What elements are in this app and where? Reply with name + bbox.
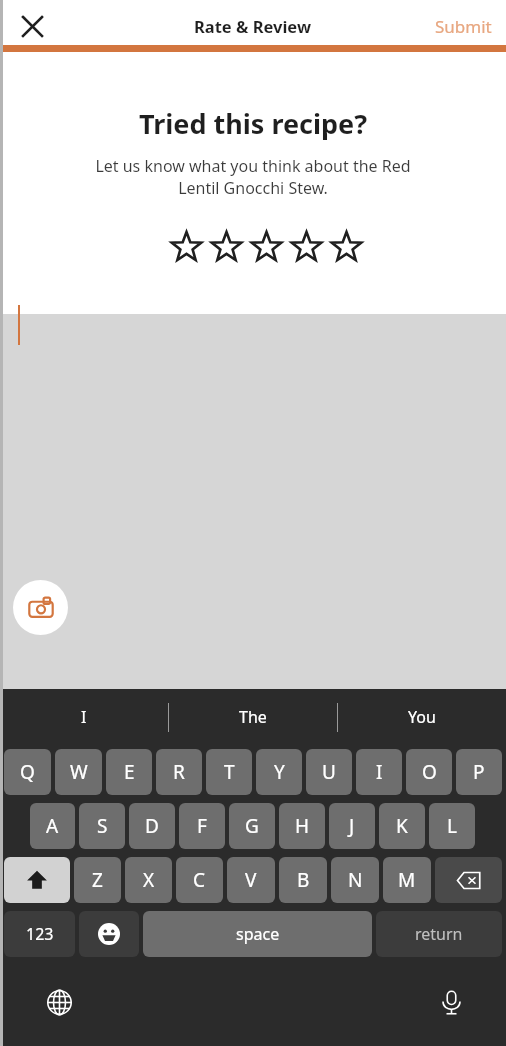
button[interactable]: C [176,857,223,903]
button[interactable]: Rate 2 stars [206,226,246,266]
staticText: Tried this recipe? [0,105,506,142]
staticText: M [398,867,416,893]
button[interactable]: X [125,857,172,903]
button[interactable]: N [331,857,379,903]
staticText: S [97,813,108,839]
button[interactable]: T [206,749,252,795]
staticText: G [245,813,259,839]
button[interactable]: K [379,803,425,849]
button[interactable]: Close [8,2,56,50]
button[interactable]: Y [256,749,302,795]
button[interactable]: L [429,803,475,849]
staticText: X [143,867,155,893]
button[interactable] [0,314,506,689]
button[interactable]: U [306,749,352,795]
staticText: A [46,813,59,839]
button[interactable]: E [106,749,152,795]
button[interactable]: H [279,803,325,849]
staticText: C [193,867,206,893]
button[interactable]: I [0,689,168,745]
button[interactable]: Rate 1 stars [166,226,206,266]
staticText: O [422,759,437,785]
staticText: W [70,759,88,785]
button[interactable]: M [383,857,431,903]
staticText: V [245,867,257,893]
button[interactable]: B [279,857,327,903]
staticText: I [376,759,383,785]
staticText: B [297,867,310,893]
staticText: 123 [26,923,54,945]
button[interactable]: F [179,803,225,849]
button[interactable]: W [55,749,102,795]
button[interactable]: Shift [4,857,70,903]
staticText: F [197,813,207,839]
button[interactable]: 123 [4,911,75,957]
button[interactable]: Rate 5 stars [326,226,366,266]
button[interactable]: Emoji [79,911,139,957]
staticText: P [473,759,485,785]
staticText: E [124,759,135,785]
button[interactable]: Add photo [13,580,68,635]
staticText: D [145,813,159,839]
staticText: L [447,813,457,839]
button[interactable]: Z [74,857,121,903]
staticText: U [322,759,336,785]
button[interactable]: R [156,749,202,795]
button[interactable]: I [356,749,402,795]
staticText: Let us know what you think about the Red… [22,155,484,199]
button[interactable]: Submit [421,7,506,46]
staticText: J [349,813,355,839]
staticText: You [408,706,436,728]
staticText: Submit [435,15,492,38]
staticText: H [295,813,310,839]
staticText: K [396,813,408,839]
staticText: N [348,867,363,893]
button[interactable]: The [169,689,337,745]
staticText: T [224,759,235,785]
staticText: Z [92,867,103,893]
staticText: space [236,923,280,945]
button[interactable]: Q [4,749,51,795]
button[interactable]: V [227,857,275,903]
button[interactable]: Rate 4 stars [286,226,326,266]
staticText: I [81,706,87,728]
button[interactable]: space [143,911,372,957]
button[interactable]: Rate 3 stars [246,226,286,266]
button[interactable]: G [229,803,275,849]
button[interactable]: J [329,803,375,849]
staticText: Y [274,759,285,785]
button[interactable]: return [376,911,502,957]
staticText: Rate & Review [194,15,312,37]
staticText: R [173,759,185,785]
button[interactable]: You [338,689,506,745]
button[interactable]: Change keyboard language [36,979,82,1025]
button[interactable]: O [406,749,452,795]
button[interactable]: S [79,803,125,849]
button[interactable]: Voice input [428,979,474,1025]
button[interactable]: A [30,803,75,849]
button[interactable]: Backspace [435,857,502,903]
staticText: return [415,923,463,945]
staticText: Q [20,759,35,785]
button[interactable]: D [129,803,175,849]
button[interactable]: P [456,749,502,795]
staticText: The [239,706,267,728]
